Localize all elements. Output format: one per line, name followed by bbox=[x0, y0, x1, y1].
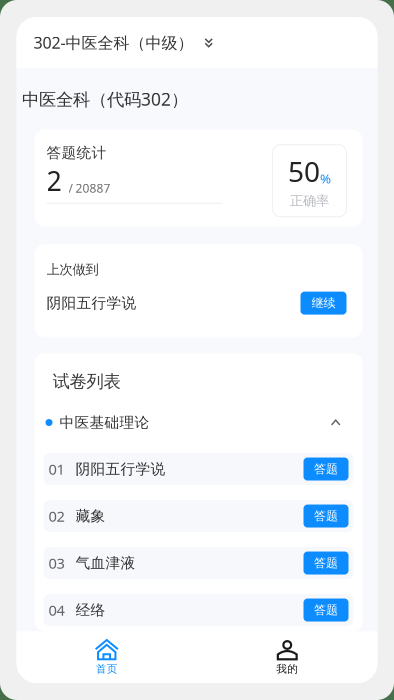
staticText: 气血津液 bbox=[75, 554, 135, 572]
button[interactable]: 答题 bbox=[303, 457, 348, 480]
staticText: 50 bbox=[288, 152, 320, 190]
staticText: 答题 bbox=[314, 509, 338, 523]
staticText: 03 bbox=[48, 553, 64, 573]
staticText: 答题 bbox=[314, 462, 338, 476]
staticText: 阴阳五行学说 bbox=[75, 460, 165, 478]
staticText: 首页 bbox=[96, 662, 118, 675]
button[interactable]: 首页 bbox=[16, 631, 197, 683]
staticText: 答题 bbox=[314, 556, 338, 570]
staticText: % bbox=[320, 169, 331, 187]
staticText: 阴阳五行学说 bbox=[46, 294, 136, 312]
button[interactable]: 02 bbox=[43, 500, 353, 532]
button[interactable]: 答题 bbox=[303, 598, 348, 621]
staticText: 04 bbox=[48, 600, 64, 620]
staticText: 答题统计 bbox=[46, 144, 106, 162]
staticText: / 20887 bbox=[68, 180, 110, 196]
button[interactable]: 中医基础理论 bbox=[34, 392, 362, 453]
staticText: 302-中医全科（中级） bbox=[33, 32, 193, 53]
staticText: 答题 bbox=[314, 603, 338, 617]
staticText: 藏象 bbox=[75, 507, 105, 525]
button[interactable]: 答题 bbox=[303, 504, 348, 527]
button[interactable]: 302-中医全科（中级） bbox=[16, 17, 377, 68]
staticText: 我的 bbox=[276, 662, 298, 675]
staticText: 中医基础理论 bbox=[59, 413, 149, 431]
button[interactable]: 我的 bbox=[197, 631, 377, 683]
button[interactable]: 答题 bbox=[303, 551, 348, 574]
button[interactable]: 04 bbox=[43, 594, 353, 626]
staticText: 试卷列表 bbox=[52, 371, 120, 392]
staticText: 上次做到 bbox=[46, 261, 98, 278]
button[interactable]: 03 bbox=[43, 547, 353, 579]
staticText: 2 bbox=[46, 163, 61, 198]
button[interactable]: 01 bbox=[43, 453, 353, 485]
staticText: 中医全科（代码302） bbox=[22, 87, 188, 110]
staticText: 继续 bbox=[311, 296, 335, 310]
staticText: 01 bbox=[48, 459, 64, 479]
staticText: 02 bbox=[48, 506, 64, 526]
button[interactable]: 继续 bbox=[300, 292, 346, 315]
staticText: 经络 bbox=[75, 601, 105, 619]
staticText: 正确率 bbox=[290, 193, 329, 209]
